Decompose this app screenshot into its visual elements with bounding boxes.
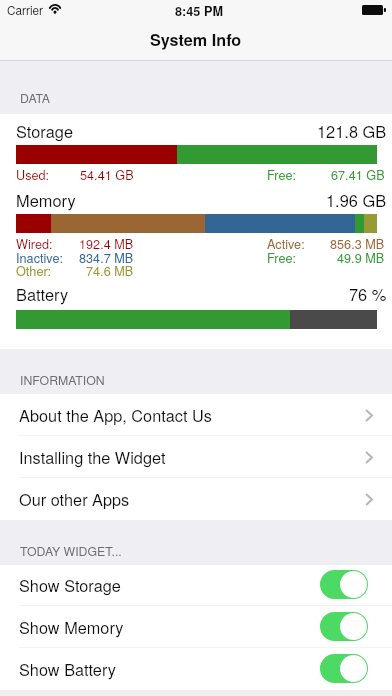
staticText: TODAY WIDGET... bbox=[20, 542, 122, 560]
staticText: Installing the Widget bbox=[19, 445, 166, 468]
staticText: INFORMATION bbox=[20, 371, 105, 389]
staticText: 76 % bbox=[349, 282, 387, 305]
staticText: Our other Apps bbox=[19, 487, 130, 510]
staticText: Storage bbox=[16, 119, 74, 142]
staticText: DATA bbox=[20, 89, 50, 107]
staticText: Show Memory bbox=[19, 615, 124, 638]
staticText: 192.4 MB bbox=[79, 234, 134, 252]
staticText: 121.8 GB bbox=[317, 119, 387, 142]
staticText: 1.96 GB bbox=[326, 188, 387, 211]
staticText: Inactive: bbox=[16, 248, 63, 266]
staticText: 54.41 GB bbox=[80, 165, 134, 183]
staticText: Used: bbox=[16, 165, 50, 183]
staticText: About the App, Contact Us bbox=[19, 403, 212, 426]
staticText: 74.6 MB bbox=[86, 261, 134, 279]
staticText: Wired: bbox=[16, 234, 53, 252]
staticText: 8:45 PM bbox=[175, 2, 223, 20]
staticText: Active: bbox=[267, 234, 305, 252]
staticText: System Info bbox=[150, 28, 242, 51]
staticText: Battery bbox=[16, 282, 69, 305]
staticText: 834.7 MB bbox=[79, 248, 134, 266]
button[interactable]: About the App, Contact Us bbox=[0, 394, 392, 436]
staticText: Free: bbox=[267, 248, 297, 266]
button[interactable]: Installing the Widget bbox=[0, 436, 392, 478]
button[interactable]: Our other Apps bbox=[0, 478, 392, 520]
staticText: Free: bbox=[267, 165, 297, 183]
button[interactable]: Show Memory bbox=[0, 606, 392, 648]
staticText: 856.3 MB bbox=[330, 234, 385, 252]
staticText: Show Battery bbox=[19, 657, 116, 680]
button[interactable]: Show Storage bbox=[0, 565, 392, 606]
other: Toggle bbox=[320, 612, 368, 641]
other: Toggle bbox=[320, 654, 368, 683]
staticText: 67.41 GB bbox=[331, 165, 385, 183]
staticText: 49.9 MB bbox=[337, 248, 385, 266]
staticText: Memory bbox=[16, 188, 76, 211]
staticText: Carrier bbox=[7, 1, 44, 18]
other: Toggle bbox=[320, 570, 368, 599]
staticText: Other: bbox=[16, 261, 51, 279]
staticText: Show Storage bbox=[19, 573, 121, 596]
button[interactable]: Show Battery bbox=[0, 648, 392, 690]
